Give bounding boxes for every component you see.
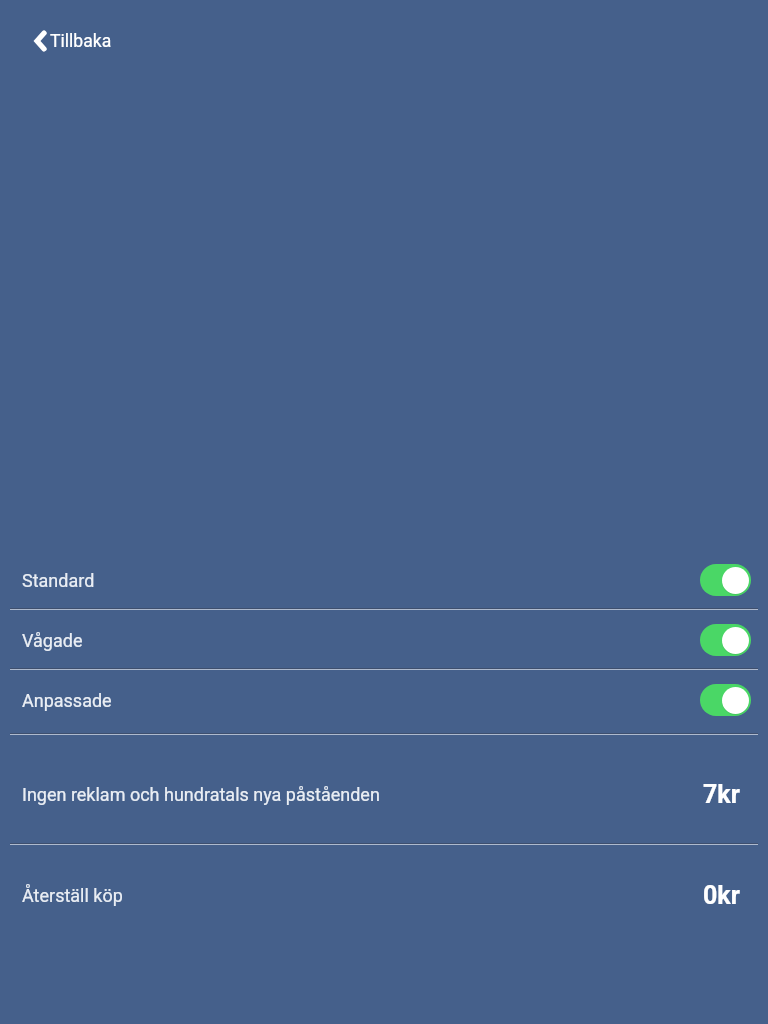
staticText: Standard <box>22 570 95 591</box>
button[interactable]: Vågade <box>0 610 768 670</box>
staticText: Tillbaka <box>50 31 112 52</box>
button[interactable]: Anpassade <box>0 670 768 730</box>
button[interactable]: Anpassade switch <box>700 684 751 716</box>
staticText: Vågade <box>22 630 83 651</box>
button[interactable]: Standard switch <box>700 564 751 596</box>
button[interactable]: Återställ köp <box>0 850 768 940</box>
staticText: Anpassade <box>22 690 112 711</box>
button[interactable]: Ingen reklam och hundratals nya påståend… <box>0 739 768 849</box>
staticText: Ingen reklam och hundratals nya påståend… <box>22 784 380 805</box>
button[interactable]: Tillbaka, back <box>26 23 112 59</box>
staticText: 7kr <box>703 780 740 809</box>
button[interactable]: Standard <box>0 550 768 610</box>
staticText: 0kr <box>703 881 740 910</box>
staticText: Återställ köp <box>22 885 123 906</box>
button[interactable]: Vågade switch <box>700 624 751 656</box>
